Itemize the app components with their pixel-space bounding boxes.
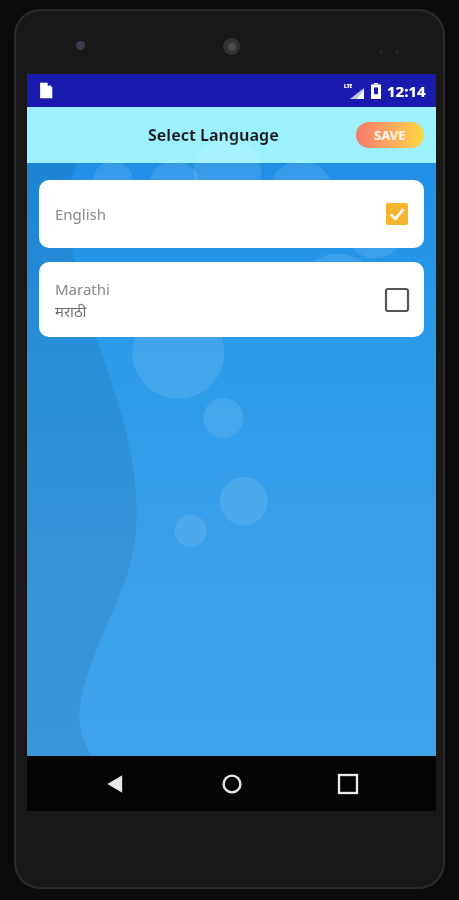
button[interactable]: Selected: [386, 203, 408, 225]
staticText: मराठी: [55, 301, 87, 321]
button[interactable]: Not selected: [386, 289, 408, 311]
button[interactable]: SAVE: [356, 122, 424, 148]
staticText: 12:14: [387, 81, 426, 101]
staticText: Marathi: [55, 279, 110, 299]
button[interactable]: English: [39, 180, 424, 248]
staticText: SAVE: [374, 126, 406, 144]
staticText: Select Language: [148, 124, 279, 146]
button[interactable]: Home: [204, 756, 260, 811]
staticText: English: [55, 204, 107, 224]
button[interactable]: Recent apps: [320, 756, 376, 811]
button[interactable]: Marathi: [39, 262, 424, 337]
staticText: LTE: [344, 83, 353, 90]
button[interactable]: Back: [87, 756, 143, 811]
